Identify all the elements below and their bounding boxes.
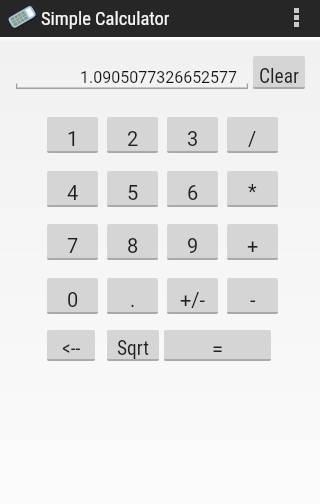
staticText: 2 — [127, 127, 139, 150]
staticText: * — [248, 180, 257, 203]
button[interactable]: 1 — [47, 117, 98, 153]
button[interactable]: 6 — [167, 171, 218, 207]
button[interactable]: - — [227, 278, 278, 314]
staticText: 5 — [127, 181, 139, 204]
staticText: Clear — [259, 65, 299, 88]
button[interactable]: 0 — [47, 278, 98, 314]
button[interactable]: Sqrt — [107, 330, 159, 361]
staticText: 3 — [187, 127, 199, 150]
staticText: 1.0905077326652577 — [80, 68, 238, 87]
button[interactable]: = — [164, 330, 271, 361]
button[interactable] — [273, 0, 320, 37]
button[interactable]: * — [227, 171, 278, 207]
button[interactable]: / — [227, 117, 278, 153]
staticText: +/- — [180, 288, 206, 311]
staticText: 4 — [67, 181, 79, 204]
staticText: 1 — [67, 127, 79, 150]
staticText: = — [212, 337, 223, 360]
button[interactable]: . — [107, 278, 158, 314]
button[interactable]: 7 — [47, 224, 98, 260]
staticText: 6 — [187, 181, 199, 204]
button[interactable]: 9 — [167, 224, 218, 260]
button[interactable]: + — [227, 224, 278, 260]
staticText: 9 — [187, 234, 199, 257]
staticText: . — [130, 288, 136, 311]
button[interactable]: 2 — [107, 117, 158, 153]
button[interactable]: +/- — [167, 278, 218, 314]
button[interactable]: 8 — [107, 224, 158, 260]
button[interactable]: 4 — [47, 171, 98, 207]
button[interactable]: 1.0905077326652577 — [16, 59, 248, 96]
button[interactable]: 3 — [167, 117, 218, 153]
button[interactable]: 5 — [107, 171, 158, 207]
staticText: / — [248, 127, 257, 150]
staticText: 0 — [67, 288, 79, 311]
staticText: Sqrt — [117, 337, 150, 360]
button[interactable]: <-- — [47, 330, 95, 361]
staticText: Simple Calculator — [41, 8, 170, 30]
staticText: <-- — [62, 337, 81, 360]
staticText: 8 — [127, 234, 139, 257]
staticText: + — [247, 234, 259, 257]
button[interactable]: Clear — [253, 56, 305, 89]
staticText: 7 — [67, 234, 79, 257]
staticText: - — [250, 288, 256, 311]
